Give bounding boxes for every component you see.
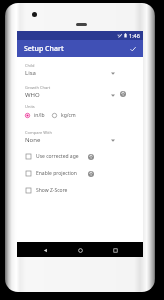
button[interactable]: Child bbox=[25, 63, 141, 77]
button[interactable]: Recents bbox=[108, 243, 122, 257]
staticText: None bbox=[25, 136, 41, 144]
staticText: Child bbox=[25, 63, 35, 68]
button[interactable]: Home bbox=[73, 243, 87, 257]
staticText: Compare With bbox=[25, 130, 52, 135]
staticText: 1:46 bbox=[129, 32, 140, 39]
staticText: WHO bbox=[25, 91, 40, 99]
staticText: Setup Chart bbox=[24, 44, 64, 54]
button[interactable]: Help bbox=[87, 170, 95, 178]
button[interactable]: Enable projection bbox=[25, 165, 141, 182]
staticText: kg/cm bbox=[61, 112, 76, 119]
button[interactable]: Help bbox=[87, 153, 95, 161]
staticText: Enable projection bbox=[36, 170, 77, 177]
staticText: Growth Chart bbox=[25, 85, 51, 90]
button[interactable]: Save bbox=[125, 41, 141, 57]
button[interactable]: Show Z-Score bbox=[25, 182, 141, 199]
button[interactable]: Growth Chart bbox=[25, 85, 141, 99]
staticText: Units bbox=[25, 104, 35, 109]
button[interactable]: Back bbox=[38, 243, 52, 257]
button[interactable]: Compare With bbox=[25, 130, 141, 144]
button[interactable]: in/lb bbox=[25, 112, 45, 119]
staticText: Use corrected age bbox=[36, 153, 79, 160]
staticText: Lisa bbox=[25, 69, 36, 77]
button[interactable]: kg/cm bbox=[52, 112, 76, 119]
button[interactable]: Use corrected age bbox=[25, 148, 141, 165]
button[interactable]: Help bbox=[119, 90, 127, 98]
staticText: Show Z-Score bbox=[36, 187, 68, 194]
staticText: in/lb bbox=[34, 112, 45, 119]
